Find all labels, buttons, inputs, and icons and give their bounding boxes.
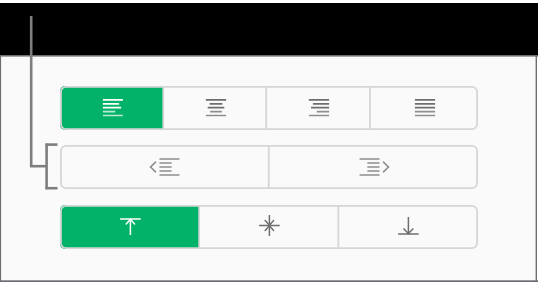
button[interactable]: Align center: [163, 86, 266, 130]
button[interactable]: Decrease indent: [60, 145, 269, 189]
button[interactable]: Align left: [60, 86, 163, 130]
button[interactable]: Justify: [370, 86, 478, 130]
button[interactable]: Align bottom: [338, 205, 477, 249]
button[interactable]: Increase indent: [269, 145, 478, 189]
button[interactable]: Align top: [60, 205, 199, 249]
button[interactable]: Align right: [266, 86, 370, 130]
button[interactable]: Align middle: [199, 205, 338, 249]
